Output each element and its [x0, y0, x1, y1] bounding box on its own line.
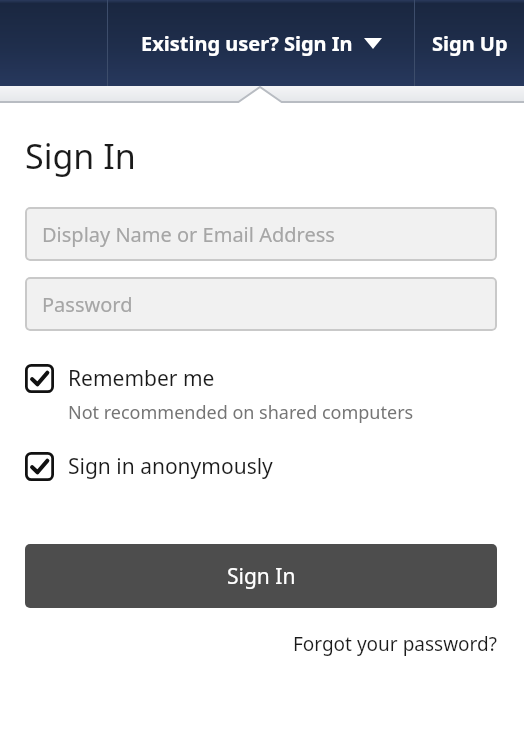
button[interactable]: Password	[25, 277, 497, 331]
button[interactable]: Sign In	[25, 544, 497, 608]
staticText: Forgot your password?	[292, 631, 497, 657]
staticText: Sign Up	[432, 30, 508, 57]
staticText: Sign In	[25, 133, 136, 179]
staticText: Existing user? Sign In	[141, 30, 353, 57]
staticText: Display Name or Email Address	[42, 221, 335, 248]
button[interactable]: Sign Up	[415, 0, 524, 86]
button[interactable]: Remember me	[25, 364, 497, 393]
staticText: Remember me	[68, 364, 215, 393]
staticText: Sign in anonymously	[68, 452, 273, 481]
button[interactable]: Sign in anonymously	[25, 452, 497, 481]
staticText: Not recommended on shared computers	[68, 400, 414, 425]
staticText: Sign In	[227, 562, 296, 591]
button[interactable]: Display Name or Email Address	[25, 207, 497, 261]
button[interactable]: Home	[0, 0, 107, 86]
button[interactable]: Forgot your password?	[292, 629, 497, 659]
button[interactable]: Existing user? Sign In	[108, 0, 414, 86]
staticText: Password	[42, 291, 133, 318]
